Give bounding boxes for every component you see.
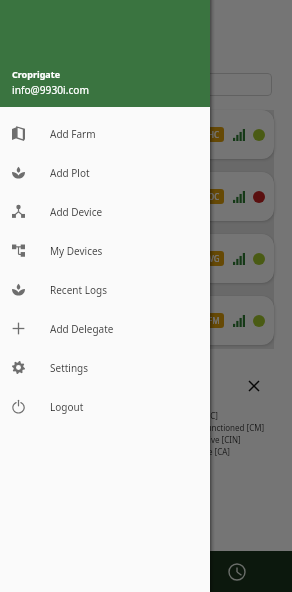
- staticText: Inactive [CIN]: [190, 434, 241, 445]
- button[interactable]: Add Device: [0, 192, 210, 231]
- button[interactable]: [14, 73, 272, 96]
- staticText: Ok [CC]: [190, 410, 218, 421]
- button[interactable]: Recent Logs: [0, 270, 210, 309]
- button[interactable]: HC: [18, 110, 274, 159]
- button[interactable]: FM: [18, 296, 274, 345]
- button[interactable]: Logout: [0, 387, 210, 426]
- button[interactable]: Add Plot: [0, 153, 210, 192]
- button[interactable]: Add Delegate: [0, 309, 210, 348]
- staticText: Logout: [50, 400, 84, 414]
- staticText: Recent Logs: [50, 283, 107, 297]
- button[interactable]: My Devices: [0, 231, 210, 270]
- staticText: Add Device: [50, 205, 103, 219]
- staticText: Settings: [50, 361, 89, 375]
- staticText: Add Delegate: [50, 322, 114, 336]
- staticText: Add Plot: [50, 166, 90, 180]
- staticText: info@9930i.com: [12, 83, 89, 97]
- staticText: Croprigate: [12, 68, 61, 80]
- button[interactable]: Settings: [0, 348, 210, 387]
- button[interactable]: Close: [242, 374, 266, 398]
- staticText: HC: [208, 129, 220, 140]
- button[interactable]: VG: [18, 234, 274, 283]
- button[interactable]: [0, 0, 292, 592]
- staticText: My Devices: [50, 244, 103, 258]
- staticText: Active [CA]: [190, 446, 230, 457]
- staticText: Add Farm: [50, 127, 96, 141]
- button[interactable]: OC: [18, 172, 274, 221]
- staticText: Malfunctioned [CM]: [190, 422, 265, 433]
- staticText: VG: [209, 253, 220, 264]
- button[interactable]: Add Farm: [0, 114, 210, 153]
- staticText: OC: [208, 191, 220, 202]
- button[interactable]: History: [222, 557, 252, 587]
- staticText: FM: [208, 315, 220, 326]
